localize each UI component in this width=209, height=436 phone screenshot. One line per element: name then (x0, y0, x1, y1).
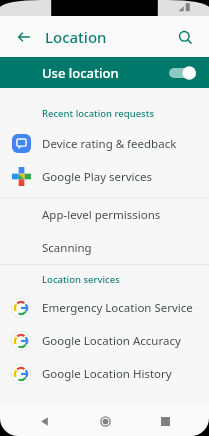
staticText: Device rating & feedback (42, 136, 177, 152)
staticText: Recent location requests (42, 107, 154, 120)
button[interactable]: Emergency Location Service (0, 291, 209, 324)
button[interactable]: Back (8, 21, 40, 53)
button[interactable]: Back (27, 406, 61, 436)
button[interactable]: Use location (0, 57, 209, 88)
staticText: Scanning (42, 240, 92, 256)
button[interactable]: Google Location Accuracy (0, 324, 209, 357)
button[interactable]: Use location toggle (169, 63, 199, 83)
button[interactable]: App-level permissions (0, 198, 209, 231)
staticText: Location (45, 27, 107, 47)
staticText: Emergency Location Service (42, 300, 193, 316)
staticText: Use location (42, 64, 119, 82)
button[interactable]: Scanning (0, 231, 209, 264)
staticText: Google Play services (42, 169, 153, 185)
button[interactable]: Recents (148, 406, 182, 436)
button[interactable]: Google Location History (0, 357, 209, 390)
staticText: Google Location History (42, 366, 172, 382)
button[interactable]: Device rating & feedback (0, 127, 209, 160)
button[interactable]: Search (170, 22, 200, 52)
staticText: Google Location Accuracy (42, 333, 181, 349)
staticText: App-level permissions (42, 207, 161, 223)
button[interactable]: Home (88, 406, 122, 436)
staticText: Location services (42, 273, 120, 286)
button[interactable]: Google Play services (0, 160, 209, 193)
